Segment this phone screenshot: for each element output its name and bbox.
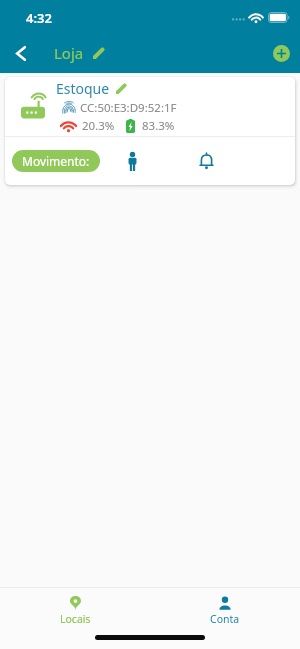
staticText: 20.3% <box>82 118 115 134</box>
staticText: Loja <box>54 43 84 63</box>
button[interactable]: Edit name <box>89 43 109 63</box>
button[interactable]: Motion sensor <box>117 146 147 176</box>
staticText: Locais <box>60 612 91 626</box>
button[interactable]: Add <box>273 45 290 62</box>
button[interactable]: Back <box>6 38 36 68</box>
staticText: CC:50:E3:D9:52:1F <box>80 100 177 116</box>
staticText: Estoque <box>56 79 110 98</box>
staticText: Movimento: <box>22 153 90 169</box>
staticText: 83.3% <box>142 118 175 134</box>
button[interactable]: Locais <box>0 588 150 629</box>
button[interactable]: Alerts <box>191 146 221 176</box>
button[interactable]: Estoque <box>5 77 295 185</box>
staticText: Conta <box>210 612 240 626</box>
button[interactable]: Conta <box>150 588 300 629</box>
staticText: 4:32 <box>26 9 52 27</box>
button[interactable]: Movimento: <box>12 150 100 172</box>
